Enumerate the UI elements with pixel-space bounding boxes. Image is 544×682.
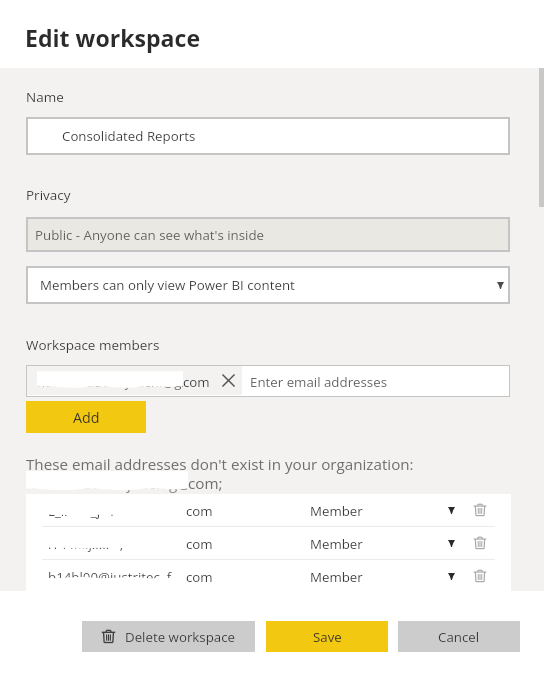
button[interactable]: Change role [442,501,460,519]
button[interactable]: Remove recipient [220,372,236,388]
button[interactable] [27,366,242,395]
staticText: i14 .f...j..... , [48,535,186,553]
staticText: com [183,373,210,391]
staticText: com [186,535,213,553]
staticText: Member [310,535,363,553]
staticText: Privacy [26,186,71,204]
staticText: com [186,568,213,586]
staticText: Edit workspace [25,22,201,53]
button[interactable]: Save [266,621,388,652]
button[interactable]: Delete workspace [82,621,255,652]
staticText: Add [73,408,100,427]
other: Open privacy dropdown [491,276,509,294]
staticText: Public - Anyone can see what's inside [35,226,265,244]
staticText: Consolidated Reports [62,127,196,145]
staticText: b14bl00@justritec f [48,568,186,586]
staticText: Delete workspace [125,628,236,646]
staticText: Members can only view Power BI content [40,276,295,294]
staticText: com; [188,473,223,494]
button[interactable]: Consolidated Reports [26,117,510,155]
staticText: Member [310,502,363,520]
staticText: Workspace members [26,336,160,354]
staticText: Enter email addresses [250,373,388,391]
staticText: Member [310,568,363,586]
button[interactable]: Add [26,401,146,433]
button[interactable]: b14bl00@justritec f [26,560,511,592]
staticText: com [186,502,213,520]
staticText: nasserhaddadjbacnl@gmail [37,373,183,391]
staticText: L_i. -- -_j . [48,502,186,520]
button[interactable]: i14 .f...j..... , [26,527,511,559]
button[interactable]: Change role [442,567,460,585]
button[interactable]: Remove member [470,500,490,520]
staticText: Save [313,628,342,646]
staticText: Name [26,88,64,106]
button[interactable]: Remove member [470,533,490,553]
staticText: These email addresses don't exist in you… [26,454,414,475]
button[interactable]: Remove member [470,566,490,586]
button[interactable]: Members can only view Power BI content [26,266,510,304]
staticText: Cancel [438,628,480,646]
button[interactable]: Change role [442,534,460,552]
button[interactable]: L_i. -- -_j . [26,494,511,526]
staticText: nasserhaddadjbacnlg@gmail [26,473,188,494]
button[interactable]: Cancel [398,621,520,652]
